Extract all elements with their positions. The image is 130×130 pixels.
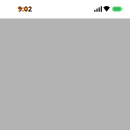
staticText: 9:02 bbox=[18, 5, 32, 13]
